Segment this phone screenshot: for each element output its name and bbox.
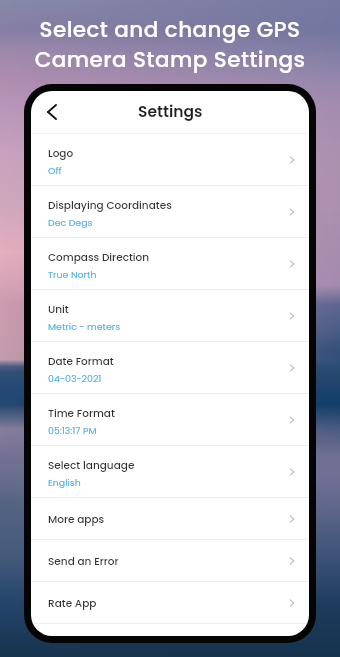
- button[interactable]: Rate App: [31, 582, 309, 624]
- staticText: English: [48, 476, 81, 489]
- staticText: Time Format: [48, 406, 115, 421]
- staticText: Rate App: [48, 596, 97, 611]
- staticText: Compass Direction: [48, 250, 150, 265]
- staticText: Send an Error: [48, 554, 119, 569]
- button[interactable]: Logo: [31, 134, 309, 186]
- button[interactable]: Time Format: [31, 394, 309, 446]
- staticText: Unit: [48, 302, 69, 317]
- staticText: 05:13:17 PM: [48, 424, 97, 437]
- staticText: Select and change GPS Camera Stamp Setti…: [0, 14, 340, 75]
- staticText: Displaying Coordinates: [48, 198, 172, 213]
- staticText: True North: [48, 268, 97, 281]
- staticText: More apps: [48, 512, 105, 527]
- staticText: Dec Degs: [48, 216, 93, 229]
- button[interactable]: Compass Direction: [31, 238, 309, 290]
- button[interactable]: Unit: [31, 290, 309, 342]
- button[interactable]: Date Format: [31, 342, 309, 394]
- button[interactable]: Select language: [31, 446, 309, 498]
- staticText: 04-03-2021: [48, 372, 102, 385]
- staticText: Date Format: [48, 354, 114, 369]
- staticText: Settings: [138, 101, 203, 123]
- button[interactable]: Displaying Coordinates: [31, 186, 309, 238]
- button[interactable]: Send an Error: [31, 540, 309, 582]
- button[interactable]: More apps: [31, 498, 309, 540]
- staticText: Metric - meters: [48, 320, 121, 333]
- button[interactable]: Back: [38, 98, 66, 126]
- staticText: Logo: [48, 146, 74, 161]
- staticText: Off: [48, 164, 62, 177]
- staticText: Select language: [48, 458, 135, 473]
